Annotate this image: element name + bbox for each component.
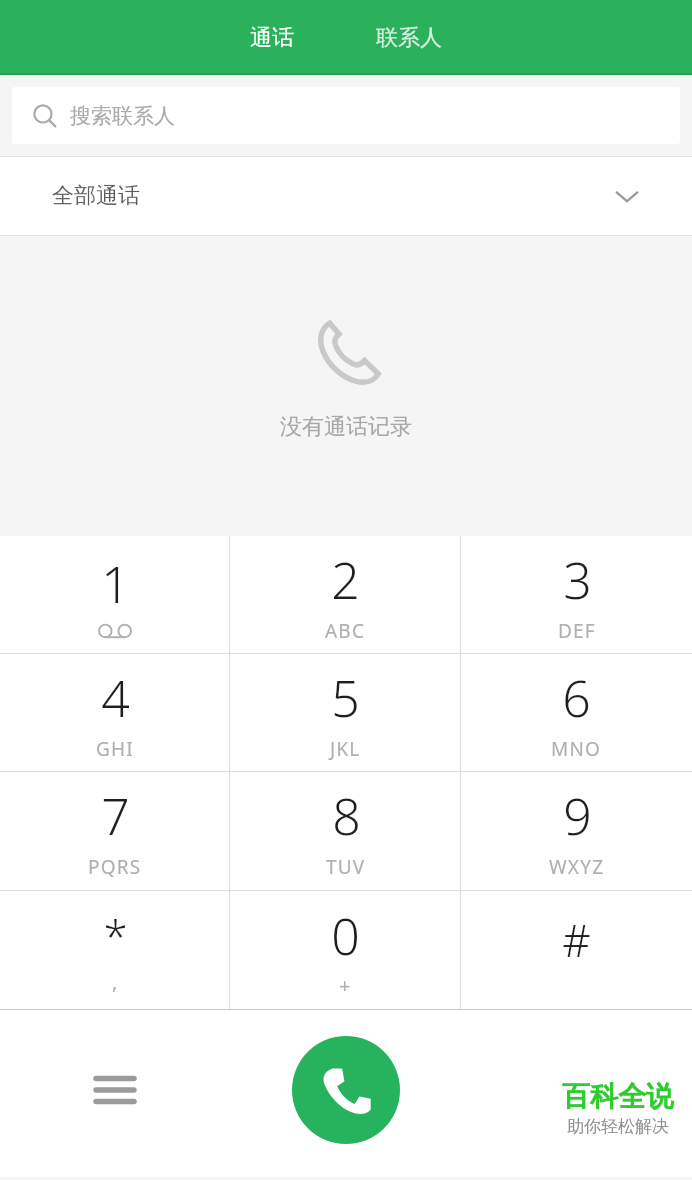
button[interactable]: 通话 bbox=[224, 16, 320, 60]
staticText: 9 bbox=[563, 782, 592, 850]
button[interactable]: Menu bbox=[85, 1060, 145, 1120]
button[interactable]: 9 bbox=[461, 772, 692, 890]
button[interactable]: 0 bbox=[230, 891, 461, 1009]
staticText: 百科全说 bbox=[562, 1079, 674, 1114]
staticText: 2 bbox=[331, 546, 360, 614]
staticText: WXYZ bbox=[549, 854, 605, 880]
staticText: ABC bbox=[325, 618, 366, 644]
staticText: TUV bbox=[326, 854, 366, 880]
button[interactable]: Call bbox=[292, 1036, 400, 1144]
staticText: + bbox=[339, 972, 352, 999]
button[interactable]: 全部通话 bbox=[0, 157, 692, 235]
staticText: DEF bbox=[558, 618, 596, 644]
staticText: PQRS bbox=[88, 854, 142, 880]
button[interactable]: 4 bbox=[0, 654, 230, 771]
staticText: * bbox=[103, 906, 128, 966]
button[interactable]: 8 bbox=[230, 772, 461, 890]
staticText: 5 bbox=[331, 664, 360, 732]
staticText: 助你轻松解决 bbox=[567, 1116, 669, 1137]
staticText: GHI bbox=[96, 736, 134, 762]
button[interactable]: 6 bbox=[461, 654, 692, 771]
button[interactable]: 7 bbox=[0, 772, 230, 890]
button[interactable]: 搜索联系人 bbox=[12, 87, 680, 144]
staticText: 通话 bbox=[250, 24, 294, 52]
staticText: 6 bbox=[562, 664, 591, 732]
staticText: JKL bbox=[330, 736, 361, 762]
staticText: 3 bbox=[563, 546, 592, 614]
button[interactable]: # bbox=[461, 891, 692, 1009]
button[interactable]: 5 bbox=[230, 654, 461, 771]
staticText: # bbox=[562, 910, 591, 970]
staticText: MNO bbox=[551, 736, 602, 762]
button[interactable]: 3 bbox=[461, 536, 692, 653]
staticText: 搜索联系人 bbox=[70, 103, 175, 129]
button[interactable]: 1 bbox=[0, 536, 230, 653]
staticText: 1 bbox=[101, 550, 130, 618]
button[interactable]: * bbox=[0, 891, 230, 1009]
button[interactable]: 联系人 bbox=[350, 16, 468, 60]
staticText: 没有通话记录 bbox=[280, 413, 412, 441]
button[interactable]: 2 bbox=[230, 536, 461, 653]
staticText: 0 bbox=[331, 902, 360, 970]
staticText: 8 bbox=[332, 782, 361, 850]
staticText: 7 bbox=[101, 782, 130, 850]
staticText: , bbox=[112, 968, 119, 995]
staticText: 联系人 bbox=[376, 24, 442, 52]
staticText: 全部通话 bbox=[52, 182, 140, 210]
staticText: 4 bbox=[101, 664, 130, 732]
